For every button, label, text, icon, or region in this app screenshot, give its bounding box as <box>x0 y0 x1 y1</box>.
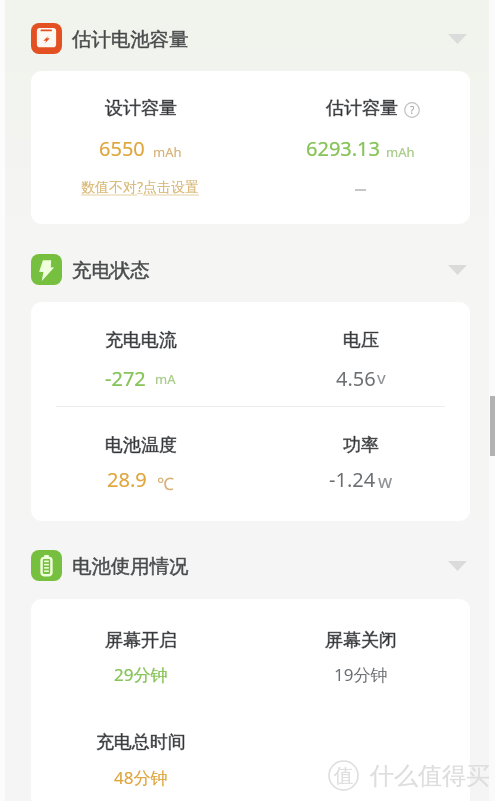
staticText: 估计电池容量 <box>72 27 189 51</box>
staticText: 设计容量 <box>105 97 177 120</box>
staticText: 6293.13 <box>306 135 380 162</box>
staticText: 19分钟 <box>334 663 388 686</box>
staticText: 电压 <box>343 329 379 352</box>
staticText: 什么值得买 <box>370 761 490 791</box>
staticText: v <box>377 366 386 389</box>
staticText: 功率 <box>343 434 379 457</box>
staticText: 4.56 <box>336 365 376 392</box>
staticText: mAh <box>386 143 415 161</box>
staticText: 电池使用情况 <box>72 554 189 578</box>
staticText: 48分钟 <box>114 766 168 789</box>
staticText: ? <box>410 103 415 117</box>
staticText: 电池使用情况 <box>72 554 189 578</box>
staticText: 屏幕开启 <box>105 629 177 652</box>
staticText: 充电状态 <box>72 258 150 282</box>
staticText: mAh <box>153 143 182 161</box>
staticText: ℃ <box>157 472 174 495</box>
staticText: 充电电流 <box>105 329 177 352</box>
staticText: 估计容量 <box>326 97 398 120</box>
staticText: 充电总时间 <box>96 731 186 754</box>
button[interactable]: Help <box>404 102 420 118</box>
other: Charging status <box>31 254 62 285</box>
staticText: 数值不对?点击设置 <box>81 177 200 196</box>
staticText: 屏幕关闭 <box>325 629 397 652</box>
staticText: 估计容量 <box>326 97 398 120</box>
button[interactable]: Battery usage <box>0 550 495 581</box>
button[interactable]: Charging status <box>0 254 495 285</box>
staticText: 功率 <box>343 434 379 457</box>
staticText: w <box>378 469 393 494</box>
staticText: 充电电流 <box>105 329 177 352</box>
staticText: 值 <box>334 764 353 788</box>
button[interactable]: 数值不对?点击设置 <box>81 177 200 196</box>
staticText: 29分钟 <box>114 663 168 686</box>
staticText: 6550 <box>99 135 145 162</box>
staticText: 估计电池容量 <box>72 27 189 51</box>
other: Estimated battery capacity <box>31 23 62 54</box>
button[interactable]: Estimated battery capacity <box>0 23 495 54</box>
staticText: -272 <box>105 365 146 392</box>
staticText: 充电状态 <box>72 258 150 282</box>
staticText: 28.9 <box>107 466 147 493</box>
other: Battery usage <box>31 550 62 581</box>
staticText: 电池温度 <box>105 434 177 457</box>
staticText: 充电总时间 <box>96 731 186 754</box>
staticText: mA <box>155 370 176 388</box>
staticText: 电池温度 <box>105 434 177 457</box>
staticText: 电压 <box>343 329 379 352</box>
staticText: 设计容量 <box>105 97 177 120</box>
staticText: -1.24 <box>329 466 376 493</box>
staticText: 屏幕关闭 <box>325 629 397 652</box>
staticText: 屏幕开启 <box>105 629 177 652</box>
